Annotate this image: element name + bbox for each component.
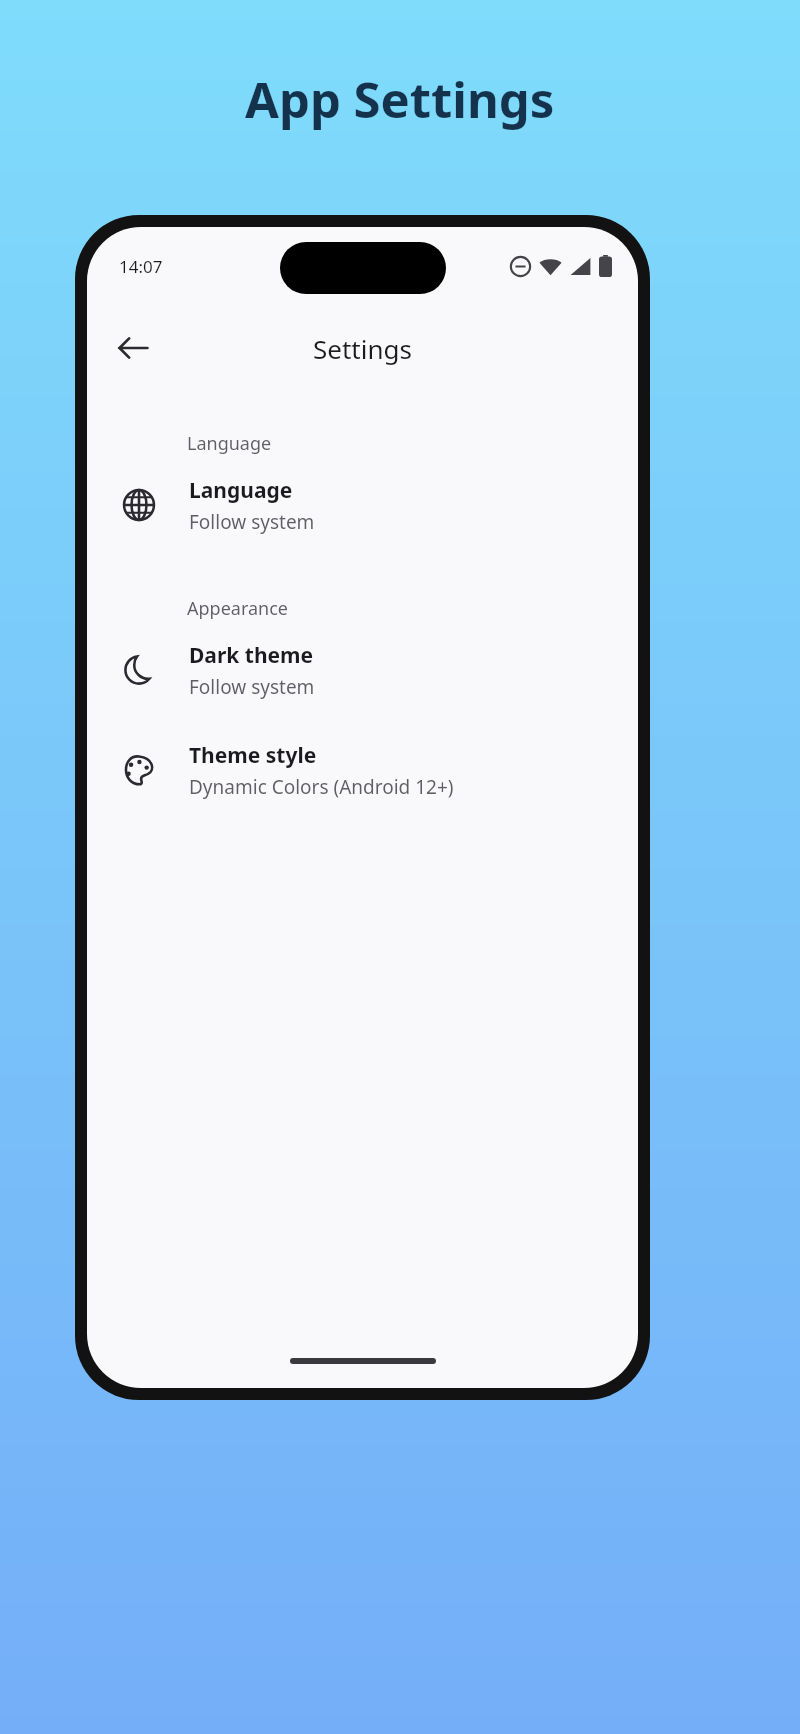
staticText: 14:07 bbox=[119, 255, 163, 278]
staticText: Language bbox=[189, 476, 293, 505]
staticText: App Settings bbox=[245, 66, 555, 133]
other: Dark theme bbox=[117, 648, 161, 692]
staticText: Dark theme bbox=[189, 641, 314, 670]
staticText: Appearance bbox=[187, 596, 288, 621]
button[interactable]: Theme style bbox=[87, 727, 638, 813]
staticText: Follow system bbox=[189, 509, 315, 535]
staticText: Theme style bbox=[189, 741, 317, 770]
staticText: Dynamic Colors (Android 12+) bbox=[189, 774, 454, 800]
staticText: Language bbox=[187, 431, 272, 456]
button[interactable]: Language bbox=[87, 462, 638, 548]
other: Language bbox=[117, 483, 161, 527]
other: Theme style bbox=[117, 748, 161, 792]
staticText: Follow system bbox=[189, 674, 315, 700]
button[interactable]: Back bbox=[105, 320, 161, 376]
button[interactable]: Dark theme bbox=[87, 627, 638, 713]
staticText: Settings bbox=[313, 331, 412, 366]
